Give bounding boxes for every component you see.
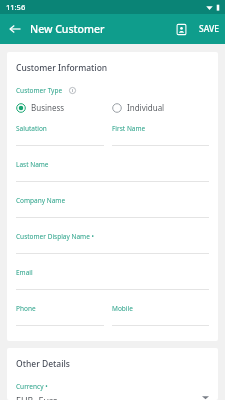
staticText: SAVE [199, 23, 219, 35]
staticText: 11:56 [6, 2, 26, 12]
button[interactable]: Contacts [169, 17, 193, 41]
staticText: Currency • [16, 382, 48, 391]
button[interactable]: Last Name [16, 160, 209, 196]
staticText: Last Name [16, 160, 49, 169]
staticText: New Customer [30, 22, 105, 36]
button[interactable]: SAVE [193, 16, 225, 42]
staticText: Customer Type [16, 86, 63, 95]
staticText: Salutation [16, 124, 47, 133]
button[interactable]: Business [16, 101, 112, 114]
button[interactable]: Email [16, 268, 209, 304]
button[interactable]: Salutation [16, 124, 112, 146]
button[interactable]: Info [67, 85, 77, 95]
staticText: Customer Information [16, 62, 108, 74]
staticText: Phone [16, 304, 36, 313]
button[interactable]: Mobile [112, 304, 209, 326]
staticText: EUR- Euro [16, 394, 202, 400]
button[interactable]: Customer Display Name • [16, 232, 209, 268]
staticText: Individual [127, 102, 165, 113]
staticText: First Name [112, 124, 146, 133]
button[interactable]: EUR- Euro [16, 394, 209, 400]
staticText: Email [16, 268, 33, 277]
button[interactable]: Company Name [16, 196, 209, 232]
button[interactable]: Individual [112, 101, 209, 114]
button[interactable]: First Name [112, 124, 209, 146]
button[interactable]: Phone [16, 304, 112, 326]
staticText: Other Details [16, 358, 70, 370]
staticText: Company Name [16, 196, 66, 205]
staticText: Business [31, 102, 65, 113]
staticText: Mobile [112, 304, 133, 313]
staticText: Customer Display Name • [16, 232, 94, 241]
button[interactable]: Back [3, 17, 27, 41]
